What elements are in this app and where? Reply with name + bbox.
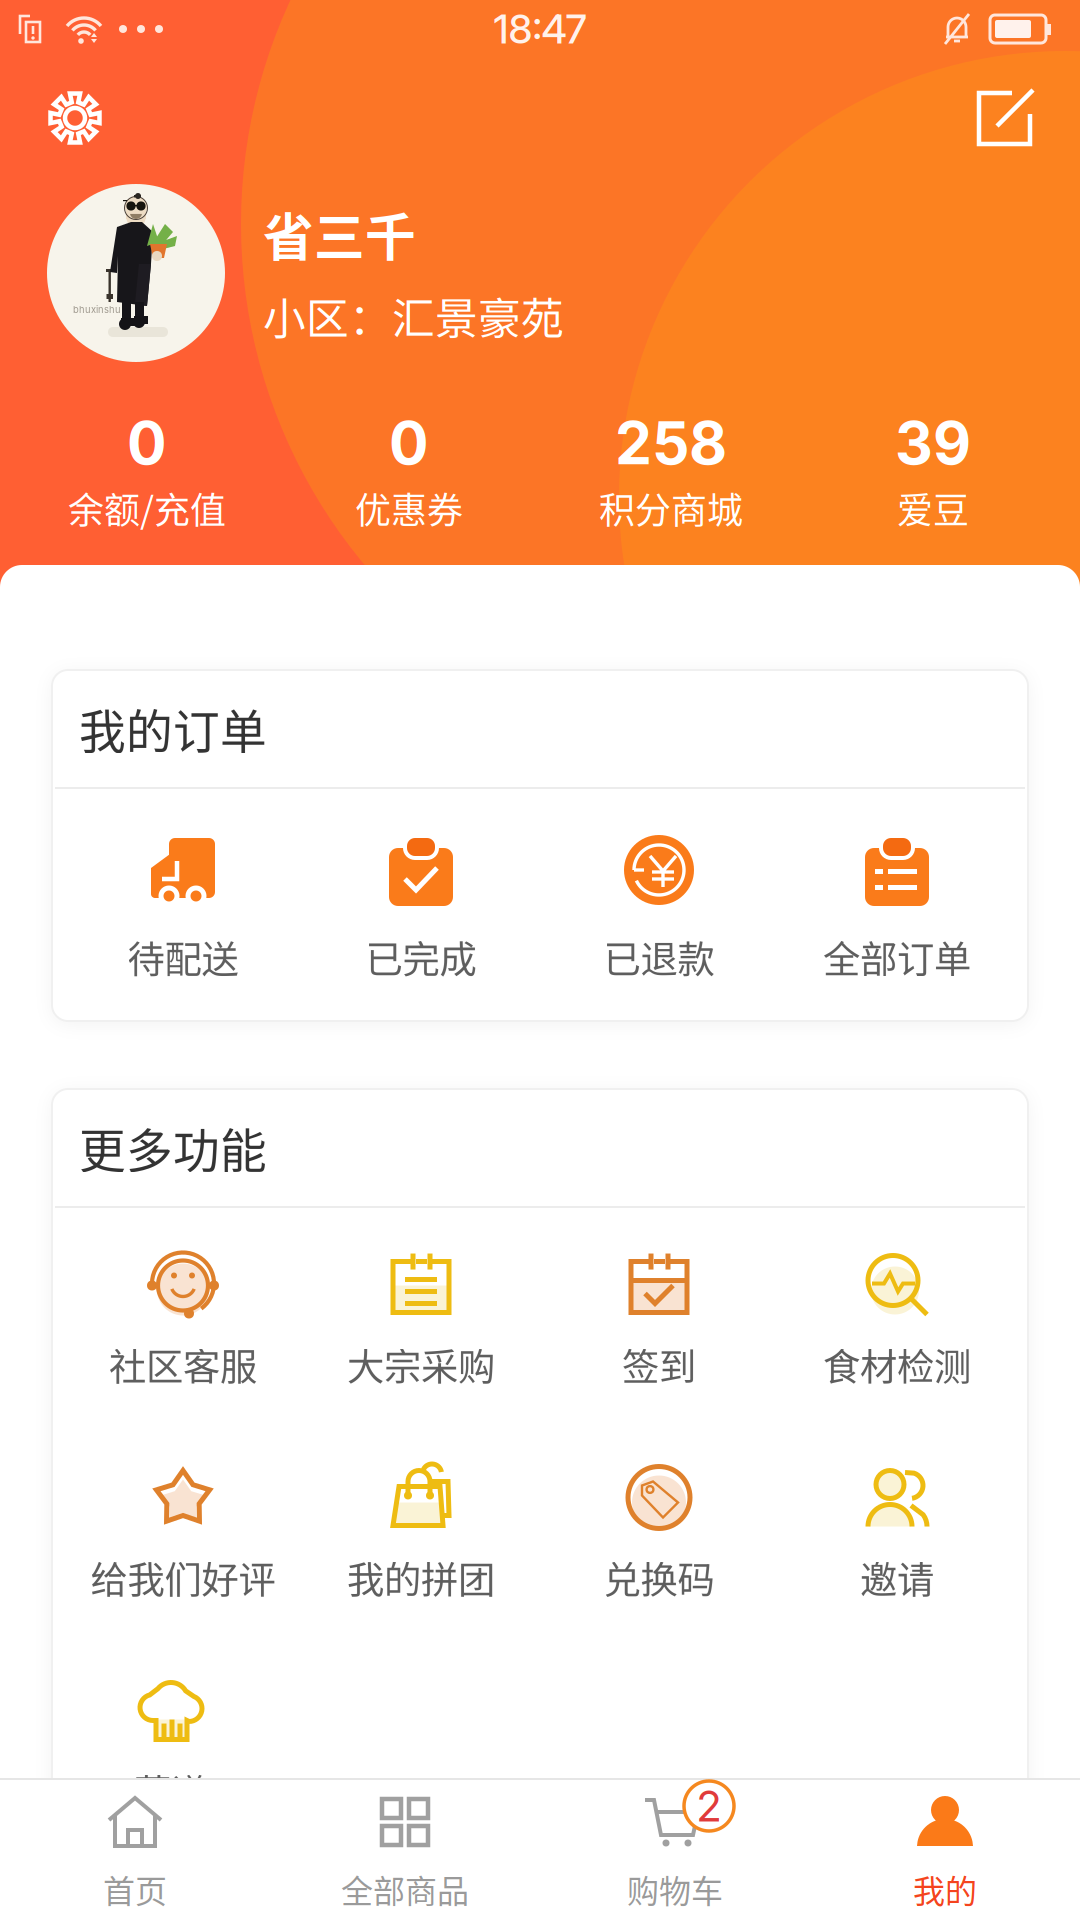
- staticText: 社区客服: [109, 1337, 257, 1392]
- staticText: 已完成: [365, 930, 476, 984]
- staticText: 菜谱: [134, 1763, 208, 1818]
- button[interactable]: 待配送: [64, 789, 302, 1021]
- button[interactable]: 0: [278, 401, 540, 541]
- button[interactable]: 首页: [0, 1779, 270, 1920]
- button[interactable]: 全部商品: [270, 1779, 540, 1920]
- button[interactable]: 2: [540, 1779, 810, 1920]
- staticText: 爱豆: [897, 482, 969, 534]
- button[interactable]: 菜谱: [52, 1634, 290, 1847]
- staticText: 余额/充值: [68, 482, 226, 534]
- button[interactable]: 已退款: [540, 789, 778, 1021]
- button[interactable]: 签到: [540, 1208, 778, 1421]
- staticText: 0: [389, 407, 429, 478]
- staticText: 我的: [913, 1866, 977, 1912]
- staticText: 待配送: [127, 930, 238, 984]
- button[interactable]: 258: [540, 401, 802, 541]
- staticText: 优惠券: [355, 482, 463, 534]
- staticText: 食材检测: [823, 1337, 971, 1392]
- staticText: 积分商城: [599, 482, 743, 534]
- staticText: 全部商品: [341, 1866, 469, 1912]
- button[interactable]: 全部订单: [778, 789, 1016, 1021]
- staticText: 2: [696, 1780, 722, 1832]
- button[interactable]: 我的拼团: [302, 1421, 540, 1634]
- staticText: 兑换码: [603, 1550, 714, 1605]
- staticText: 39: [895, 407, 971, 478]
- button[interactable]: 39: [802, 401, 1064, 541]
- staticText: 我的拼团: [347, 1550, 495, 1605]
- button[interactable]: 社区客服: [64, 1208, 302, 1421]
- staticText: 首页: [103, 1866, 167, 1912]
- button[interactable]: 邀请: [778, 1421, 1016, 1634]
- button[interactable]: 已完成: [302, 789, 540, 1021]
- staticText: 0: [127, 407, 167, 478]
- staticText: 全部订单: [823, 930, 971, 984]
- staticText: 258: [615, 407, 727, 478]
- staticText: 省三千: [263, 197, 416, 271]
- staticText: 大宗采购: [347, 1337, 495, 1392]
- button[interactable]: 给我们好评: [64, 1421, 302, 1634]
- staticText: 小区：汇景豪苑: [263, 285, 564, 347]
- button[interactable]: 食材检测: [778, 1208, 1016, 1421]
- staticText: bhuxinshu: [73, 304, 121, 315]
- button[interactable]: Settings: [32, 75, 118, 161]
- button[interactable]: 大宗采购: [302, 1208, 540, 1421]
- staticText: 我的订单: [79, 695, 267, 762]
- button[interactable]: 0: [16, 401, 278, 541]
- staticText: 更多功能: [79, 1114, 267, 1181]
- staticText: 18:47: [493, 5, 586, 53]
- button[interactable]: 我的: [810, 1779, 1080, 1920]
- button[interactable]: 兑换码: [540, 1421, 778, 1634]
- button[interactable]: Edit profile: [962, 75, 1048, 161]
- staticText: 签到: [622, 1337, 696, 1392]
- staticText: 给我们好评: [90, 1550, 275, 1605]
- staticText: 邀请: [860, 1550, 934, 1605]
- staticText: 购物车: [627, 1866, 723, 1912]
- staticText: 已退款: [603, 930, 714, 984]
